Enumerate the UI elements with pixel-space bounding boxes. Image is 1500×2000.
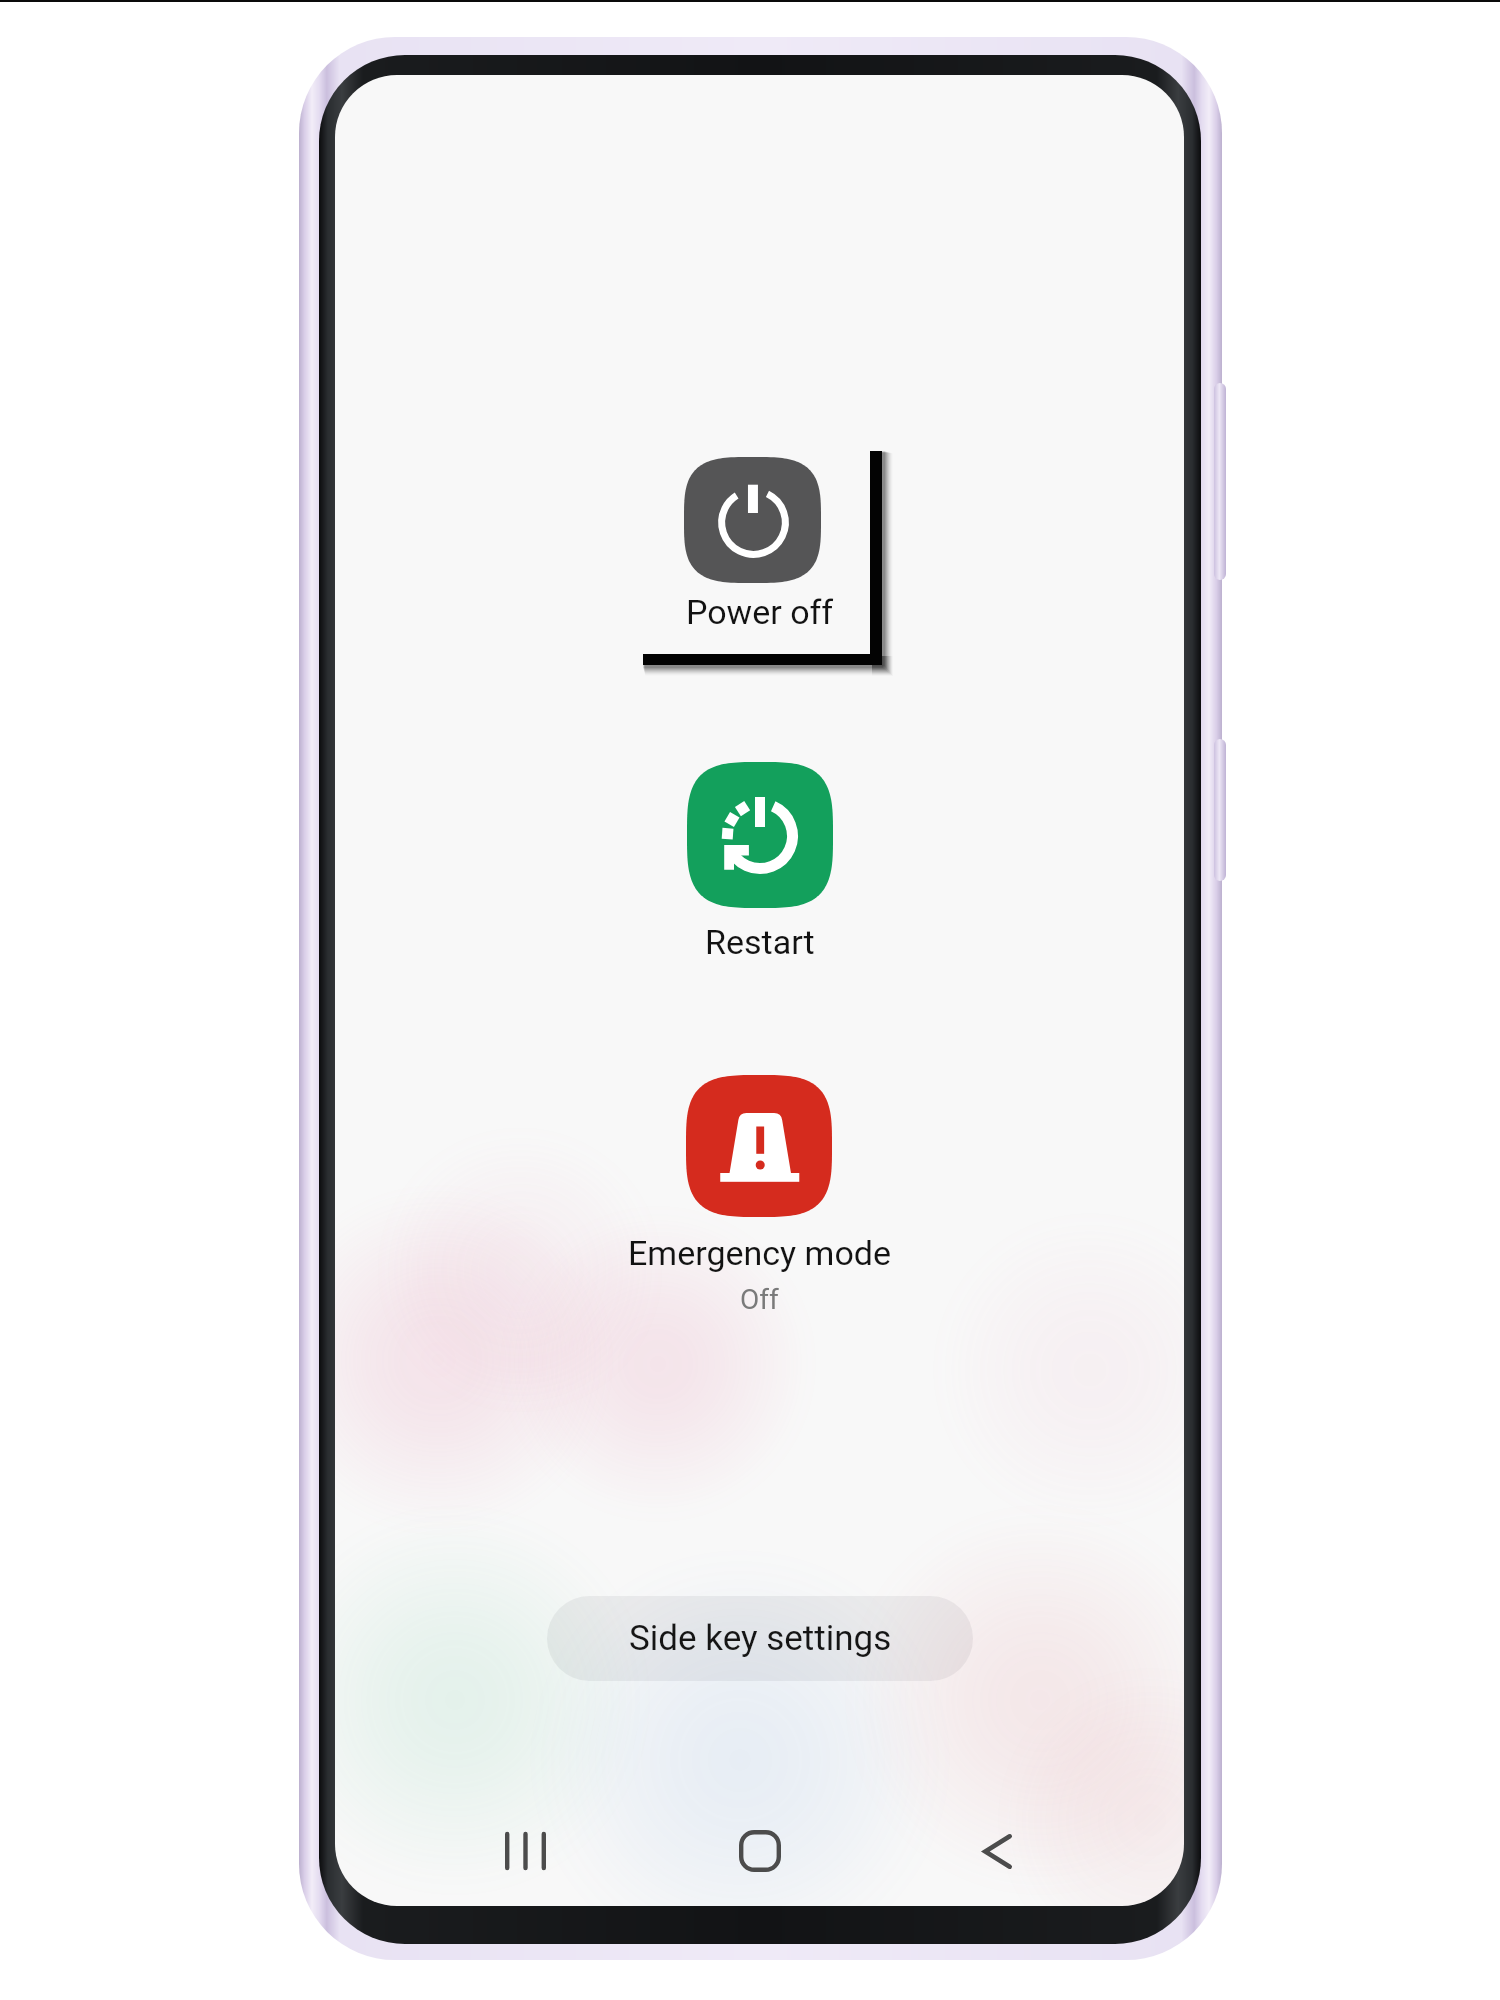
staticText: Off bbox=[740, 1283, 779, 1316]
staticText: Power off bbox=[686, 592, 834, 632]
button[interactable]: Power off bbox=[335, 447, 1184, 638]
button[interactable]: Recent apps bbox=[460, 1806, 590, 1896]
button[interactable]: Restart bbox=[335, 752, 1184, 968]
staticText: Side key settings bbox=[629, 1618, 892, 1659]
button[interactable]: Home bbox=[695, 1806, 825, 1896]
staticText: Restart bbox=[705, 922, 815, 962]
button[interactable]: Emergency mode bbox=[335, 1065, 1184, 1329]
button[interactable]: Back bbox=[932, 1806, 1062, 1896]
button[interactable]: Side key settings bbox=[547, 1596, 973, 1681]
staticText: Emergency mode bbox=[628, 1233, 892, 1273]
